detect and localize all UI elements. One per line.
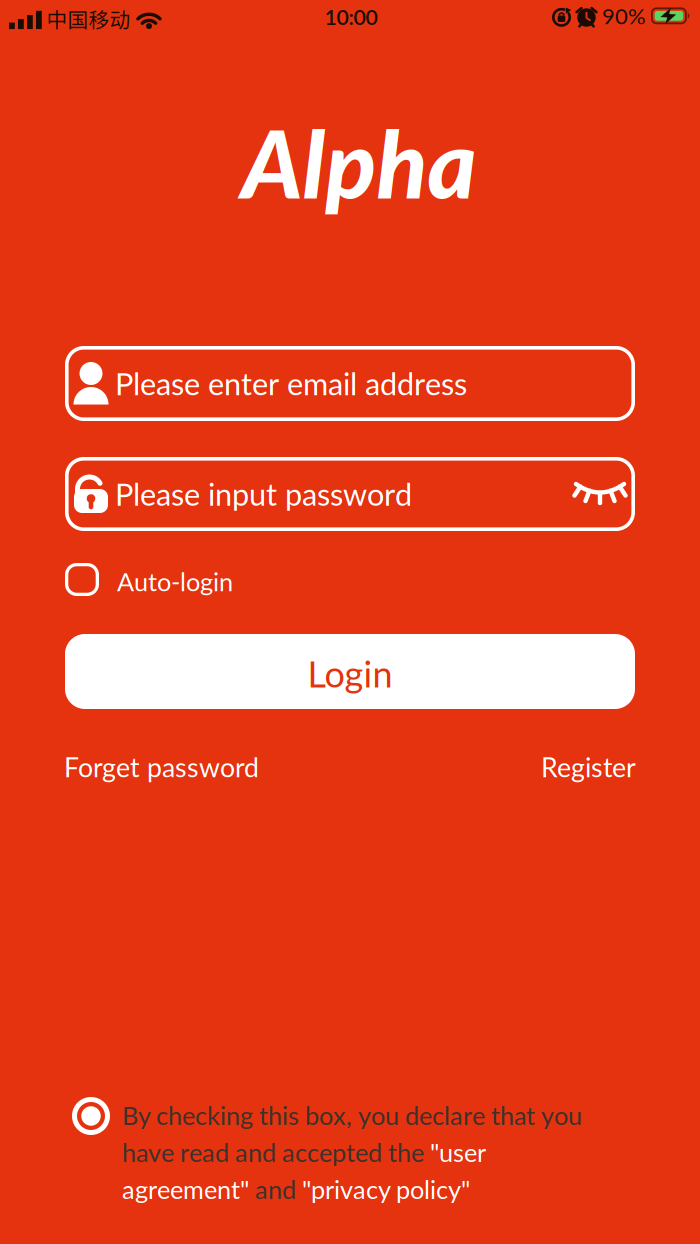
button[interactable]: Please enter email address bbox=[65, 346, 635, 421]
staticText: Auto-login bbox=[117, 566, 233, 597]
staticText: "user bbox=[430, 1137, 486, 1167]
button[interactable]: Accept terms bbox=[72, 1097, 110, 1135]
staticText: have read and accepted the bbox=[122, 1137, 430, 1167]
staticText: 90% bbox=[602, 3, 646, 29]
staticText: Please input password bbox=[115, 476, 412, 512]
button[interactable]: Auto-login bbox=[65, 563, 233, 596]
button[interactable]: "user bbox=[430, 1137, 486, 1167]
staticText: Register bbox=[541, 751, 636, 783]
button[interactable]: Show password bbox=[572, 476, 628, 506]
staticText: agreement" bbox=[122, 1174, 249, 1204]
button[interactable]: Forget password bbox=[64, 751, 259, 783]
staticText: 中国移动 bbox=[46, 4, 130, 34]
button[interactable]: Please input password bbox=[65, 457, 635, 531]
staticText: By checking this box, you declare that y… bbox=[122, 1100, 582, 1130]
button[interactable]: Login bbox=[65, 634, 635, 709]
staticText: 10:00 bbox=[324, 4, 377, 29]
button[interactable]: Register bbox=[541, 751, 636, 783]
button[interactable]: "privacy policy" bbox=[302, 1174, 470, 1204]
staticText: Alpha bbox=[241, 106, 476, 218]
staticText: Login bbox=[307, 652, 392, 695]
staticText: and bbox=[249, 1174, 302, 1204]
staticText: "privacy policy" bbox=[302, 1174, 470, 1204]
staticText: Please enter email address bbox=[115, 365, 467, 402]
staticText: Forget password bbox=[64, 751, 259, 783]
button[interactable]: agreement" bbox=[122, 1174, 249, 1204]
